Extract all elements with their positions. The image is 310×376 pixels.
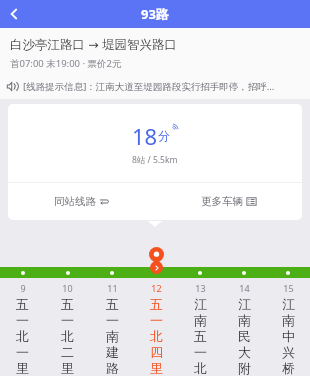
staticText: [线路提示信息]：江南大道至堤园路段实行招手即停，招呼... (23, 80, 275, 93)
staticText: 江 (282, 296, 295, 312)
staticText: 一 (150, 312, 163, 328)
staticText: 北 (150, 328, 163, 344)
staticText: 93路 (141, 5, 169, 23)
button[interactable]: [线路提示信息]：江南大道至堤园路段实行招手即停，招呼... (0, 77, 310, 99)
staticText: 12 (151, 282, 162, 294)
staticText: 桥 (282, 360, 295, 376)
staticText: 五 (194, 328, 207, 344)
button[interactable]: 同站线路 (8, 183, 155, 220)
staticText: 北 (194, 360, 207, 376)
staticText: 建 (106, 344, 119, 360)
staticText: 一 (194, 344, 207, 360)
staticText: 附 (238, 360, 251, 376)
staticText: 15 (283, 282, 294, 294)
staticText: 二 (61, 344, 74, 360)
staticText: 兴 (282, 344, 295, 360)
staticText: 五 (16, 296, 29, 312)
button[interactable]: Back (0, 0, 28, 28)
staticText: 白沙亭江路口 → 堤园智兴路口 (10, 36, 177, 53)
button[interactable]: 更多车辆 (155, 183, 302, 220)
staticText: 江 (238, 296, 251, 312)
staticText: 南 (106, 328, 119, 344)
staticText: 五 (106, 296, 119, 312)
button[interactable]: 15 (266, 282, 310, 376)
staticText: 8站 / 5.5km (132, 154, 178, 166)
staticText: 11 (107, 282, 118, 294)
staticText: 里 (16, 360, 29, 376)
button[interactable]: 12 (134, 282, 178, 376)
staticText: 更多车辆 (201, 195, 243, 208)
staticText: 里 (150, 360, 163, 376)
staticText: 中 (282, 328, 295, 344)
staticText: 10 (62, 282, 73, 294)
staticText: 一 (16, 344, 29, 360)
staticText: 五 (61, 296, 74, 312)
button[interactable]: 白沙亭江路口 → 堤园智兴路口 (0, 28, 310, 77)
staticText: 北 (61, 328, 74, 344)
staticText: 13 (195, 282, 206, 294)
staticText: 大 (238, 344, 251, 360)
staticText: 18 (132, 121, 158, 151)
staticText: 同站线路 (54, 195, 96, 208)
staticText: 一 (61, 312, 74, 328)
staticText: 一 (106, 312, 119, 328)
staticText: 江 (194, 296, 207, 312)
button[interactable]: 9 (0, 282, 45, 376)
staticText: 一 (16, 312, 29, 328)
staticText: 五 (150, 296, 163, 312)
staticText: 里 (61, 360, 74, 376)
staticText: 首07:00 末19:00 · 票价2元 (10, 57, 122, 70)
staticText: 四 (150, 344, 163, 360)
staticText: 民 (238, 328, 251, 344)
staticText: 南 (194, 312, 207, 328)
staticText: 南 (282, 312, 295, 328)
staticText: 14 (239, 282, 250, 294)
button[interactable]: 13 (178, 282, 222, 376)
staticText: 路 (106, 360, 119, 376)
button[interactable]: 14 (222, 282, 266, 376)
staticText: 北 (16, 328, 29, 344)
staticText: 南 (238, 312, 251, 328)
staticText: 分 (158, 128, 170, 143)
button[interactable]: 10 (45, 282, 90, 376)
button[interactable]: 11 (90, 282, 134, 376)
staticText: 9 (20, 282, 26, 294)
other: Current bus position (150, 261, 163, 274)
